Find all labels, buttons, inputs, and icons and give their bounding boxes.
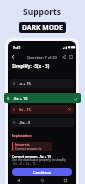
staticText: DARK MODE	[22, 23, 63, 32]
staticText: -5x - 3	[19, 120, 30, 125]
staticText: -5(x - 3) = -5x + 15	[12, 162, 36, 166]
button[interactable]: Home	[40, 178, 45, 183]
button[interactable]: A	[10, 79, 74, 88]
button[interactable]: B	[4, 93, 81, 103]
staticText: A	[13, 81, 16, 86]
button[interactable]: Bookmark	[67, 53, 75, 61]
staticText: Explanation	[12, 133, 32, 137]
button[interactable]: Share	[60, 53, 68, 61]
button[interactable]: D	[10, 118, 74, 127]
staticText: 5x - 15	[19, 107, 31, 112]
button[interactable]: Back	[16, 178, 21, 183]
staticText: C	[13, 107, 16, 112]
staticText: Continue	[33, 170, 52, 175]
button[interactable]: Continue	[12, 168, 72, 176]
staticText: Question 7 of 20	[27, 55, 57, 60]
staticText: Correct answer: -5x + 15	[12, 154, 52, 158]
staticText: D	[13, 120, 16, 125]
button[interactable]: C	[10, 105, 74, 114]
staticText: Supports	[23, 6, 62, 18]
staticText: -x + 15	[19, 81, 31, 86]
button[interactable]: Back	[9, 53, 17, 61]
staticText: Simplify: -5(x - 3)	[12, 63, 50, 69]
staticText: Correct answer: b	[15, 147, 42, 151]
staticText: -5x + 15	[13, 96, 28, 101]
staticText: B	[7, 96, 10, 101]
button[interactable]: Recents	[63, 178, 68, 183]
staticText: 9:41	[13, 45, 21, 50]
staticText: Use the distributive property to simplif…	[12, 158, 66, 162]
staticText: Incorrect	[15, 143, 30, 147]
